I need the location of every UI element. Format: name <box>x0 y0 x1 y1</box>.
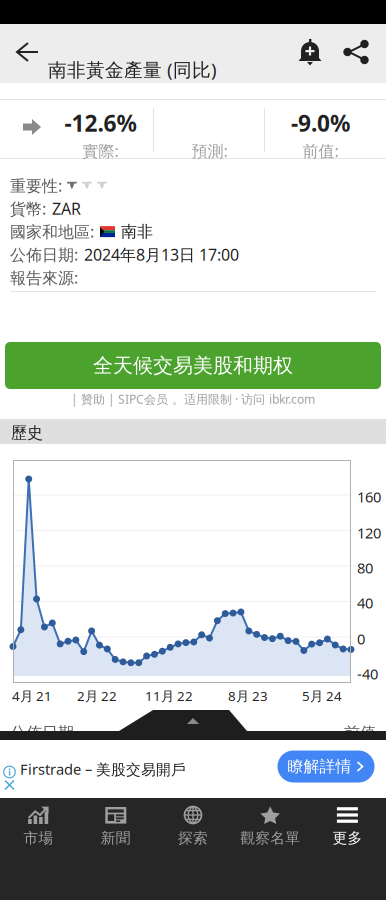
staticText: 全天候交易美股和期权 <box>93 353 293 378</box>
staticText: 探索 <box>178 829 208 847</box>
button[interactable]: Firstrade – 美股交易開戶 <box>0 740 386 798</box>
staticText: 觀察名單 <box>240 829 300 847</box>
staticText: 11月 22 <box>145 687 193 705</box>
staticText: -40 <box>357 664 378 683</box>
staticText: 前值 <box>344 723 376 743</box>
staticText: 更多 <box>332 829 362 847</box>
staticText: | 贊助 | SIPC会员 。适用限制 · 访问 ibkr.com <box>71 391 315 407</box>
staticText: 80 <box>357 558 373 577</box>
staticText: 南非黃金產量 (同比) <box>48 57 217 82</box>
staticText: 重要性: <box>10 175 62 196</box>
button[interactable]: 觀察名單 <box>232 806 309 858</box>
staticText: 國家和地區: <box>10 221 94 242</box>
button[interactable]: Back <box>4 30 48 74</box>
staticText: 報告來源: <box>10 267 78 288</box>
button[interactable]: Share <box>334 30 378 74</box>
staticText: 市場 <box>24 829 54 847</box>
staticText: 120 <box>357 523 381 542</box>
staticText: 40 <box>357 593 373 612</box>
button[interactable]: Add alert <box>288 30 332 74</box>
button[interactable]: 新聞 <box>77 806 154 858</box>
staticText: 0 <box>357 629 365 648</box>
staticText: 前值: <box>302 140 338 161</box>
staticText: 公佈日期 <box>10 723 74 743</box>
staticText: 瞭解詳情 <box>287 757 351 776</box>
button[interactable]: Expand table <box>0 705 386 740</box>
staticText: 實際: <box>82 140 118 161</box>
staticText: Firstrade – 美股交易開戶 <box>20 759 186 779</box>
staticText: 5月 24 <box>302 687 342 705</box>
staticText: 2024年8月13日 17:00 <box>84 244 239 265</box>
button[interactable]: 更多 <box>309 806 386 858</box>
staticText: 公佈日期: <box>10 244 78 265</box>
staticText: 南非 <box>121 222 153 241</box>
staticText: -9.0% <box>291 108 350 138</box>
staticText: 實際 <box>193 723 225 743</box>
staticText: 2月 22 <box>77 687 117 705</box>
staticText: 貨幣: <box>10 198 46 219</box>
button[interactable]: 全天候交易美股和期权 <box>5 342 381 389</box>
staticText: 4月 21 <box>12 687 52 705</box>
staticText: 新聞 <box>101 829 131 847</box>
staticText: -12.6% <box>64 108 136 138</box>
staticText: 預測: <box>191 140 227 161</box>
staticText: 8月 23 <box>228 687 268 705</box>
staticText: ZAR <box>52 198 81 219</box>
button[interactable]: 探索 <box>154 806 232 858</box>
staticText: 160 <box>357 487 381 506</box>
button[interactable]: 市場 <box>0 806 77 858</box>
staticText: 歷史 <box>11 423 43 443</box>
